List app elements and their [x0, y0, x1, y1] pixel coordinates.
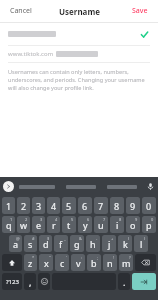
button[interactable]: c [55, 254, 69, 271]
staticText: q [6, 219, 12, 231]
staticText: $ [47, 236, 50, 241]
staticText: f [59, 238, 63, 250]
staticText: Usernames can contain only letters, numb… [8, 68, 150, 92]
button[interactable]: ?123 [2, 273, 22, 290]
button[interactable]: x [39, 254, 53, 271]
staticText: 2 [21, 200, 27, 212]
button[interactable]: b [87, 254, 101, 271]
button[interactable]: Save [129, 3, 151, 19]
staticText: @ [16, 236, 20, 241]
staticText: , [29, 276, 32, 288]
staticText: 8 [114, 200, 120, 212]
staticText: x [44, 257, 49, 269]
staticText: h [90, 238, 96, 250]
staticText: y [83, 219, 88, 231]
staticText: r [52, 219, 56, 231]
button[interactable]: r [47, 216, 60, 233]
staticText: l [140, 238, 143, 250]
button[interactable]: m [119, 254, 133, 271]
staticText: www.tiktok.com [8, 50, 54, 58]
button[interactable]: 5 [62, 197, 76, 214]
staticText: v [76, 257, 81, 269]
button[interactable]: 2 [17, 197, 30, 214]
button[interactable]: t [62, 216, 76, 233]
staticText: - [96, 236, 98, 241]
button[interactable]: Cancel [7, 3, 35, 19]
button[interactable]: p [142, 216, 156, 233]
button[interactable]: 6 [78, 197, 92, 214]
button[interactable]: w [17, 216, 30, 233]
staticText: c [60, 257, 65, 269]
button[interactable]: g [70, 235, 84, 252]
button[interactable]: l [134, 235, 148, 252]
button[interactable]: Username available [0, 23, 158, 45]
staticText: 2 [25, 217, 28, 222]
staticText: 8 [119, 217, 122, 222]
staticText: i [116, 219, 119, 231]
button[interactable]: h [86, 235, 100, 252]
staticText: 3 [40, 217, 43, 222]
staticText: : [81, 255, 83, 260]
staticText: g [74, 238, 80, 250]
staticText: 4 [51, 200, 57, 212]
staticText: e [36, 219, 42, 231]
staticText: Cancel [10, 6, 32, 16]
button[interactable]: e [32, 216, 45, 233]
staticText: b [91, 257, 97, 269]
button[interactable]: z [24, 254, 37, 271]
staticText: ?123 [6, 278, 19, 286]
button[interactable]: . [118, 273, 130, 290]
staticText: # [32, 236, 35, 241]
button[interactable]: k [118, 235, 132, 252]
button[interactable]: j [102, 235, 116, 252]
staticText: Save [132, 6, 148, 16]
button[interactable]: q [2, 216, 15, 233]
button[interactable]: 7 [94, 197, 108, 214]
staticText: a [13, 238, 19, 250]
staticText: u [98, 219, 104, 231]
button[interactable]: Emoji [38, 273, 50, 290]
staticText: ? [129, 255, 131, 260]
staticText: 5 [66, 200, 72, 212]
button[interactable]: n [103, 254, 117, 271]
button[interactable]: Enter [132, 273, 156, 290]
staticText: p [146, 219, 152, 231]
staticText: * [32, 255, 35, 260]
staticText: 1 [10, 217, 13, 222]
staticText: 7 [103, 217, 106, 222]
button[interactable]: Backspace [135, 254, 156, 271]
button[interactable]: 9 [126, 197, 140, 214]
button[interactable]: s [24, 235, 37, 252]
staticText: w [20, 219, 28, 231]
button[interactable]: 4 [47, 197, 60, 214]
button[interactable]: o [126, 216, 140, 233]
staticText: n [107, 257, 113, 269]
button[interactable]: i [110, 216, 124, 233]
staticText: z [28, 257, 33, 269]
button[interactable]: 3 [32, 197, 45, 214]
button[interactable]: Voice input [146, 182, 155, 191]
staticText: o [130, 219, 136, 231]
button[interactable]: 8 [110, 197, 124, 214]
staticText: 3 [36, 200, 42, 212]
button[interactable]: 1 [2, 197, 15, 214]
staticText: ) [144, 236, 146, 241]
button[interactable]: a [9, 235, 22, 252]
button[interactable]: Expand toolbar [3, 181, 14, 192]
button[interactable]: u [94, 216, 108, 233]
staticText: 0 [151, 217, 154, 222]
button[interactable]: , [24, 273, 36, 290]
button[interactable]: f [54, 235, 68, 252]
button[interactable]: d [39, 235, 52, 252]
button[interactable]: y [78, 216, 92, 233]
staticText: k [123, 238, 128, 250]
button[interactable]: Shift [2, 254, 22, 271]
button[interactable]: 0 [142, 197, 156, 214]
button[interactable]: v [71, 254, 85, 271]
staticText: 9 [130, 200, 136, 212]
staticText: d [43, 238, 49, 250]
